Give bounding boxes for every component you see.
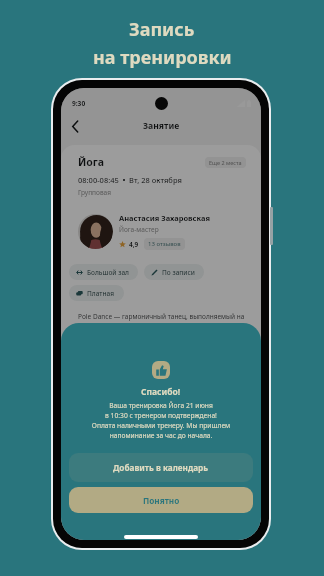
staticText: 08:00-08:45 <box>78 175 119 185</box>
staticText: Понятно <box>143 495 180 506</box>
button[interactable]: По записи <box>144 264 204 280</box>
staticText: Занятие <box>143 120 180 132</box>
staticText: Ваша тренировка Йога 21 июня в 10:30 с т… <box>69 401 253 440</box>
staticText: Запись <box>129 17 195 42</box>
button[interactable]: 13 отзывов <box>144 238 185 250</box>
staticText: Спасибо! <box>141 386 181 398</box>
button[interactable]: Понятно <box>69 487 253 513</box>
staticText: 13 отзывов <box>148 240 181 248</box>
staticText: Анастасия Захаровская <box>119 213 210 223</box>
staticText: Йога <box>78 155 105 169</box>
staticText: на тренировки <box>93 45 232 70</box>
staticText: Еще 2 места <box>209 159 242 166</box>
button[interactable]: Большой зал <box>69 264 138 280</box>
button[interactable]: Back <box>65 116 85 136</box>
staticText: 9:30 <box>72 99 86 108</box>
staticText: По записи <box>162 268 195 277</box>
staticText: 4,9 <box>129 240 139 249</box>
staticText: Вт, 28 октября <box>129 175 182 185</box>
staticText: Добавить в календарь <box>113 462 209 473</box>
button[interactable]: Платная <box>69 285 124 301</box>
staticText: Групповая <box>78 188 111 197</box>
staticText: Йога-мастер <box>119 225 159 234</box>
staticText: Платная <box>87 289 115 298</box>
staticText: Pole Dance — гармоничный танец, выполняе… <box>78 312 245 321</box>
button[interactable]: Добавить в календарь <box>69 453 253 482</box>
staticText: Большой зал <box>87 268 129 277</box>
